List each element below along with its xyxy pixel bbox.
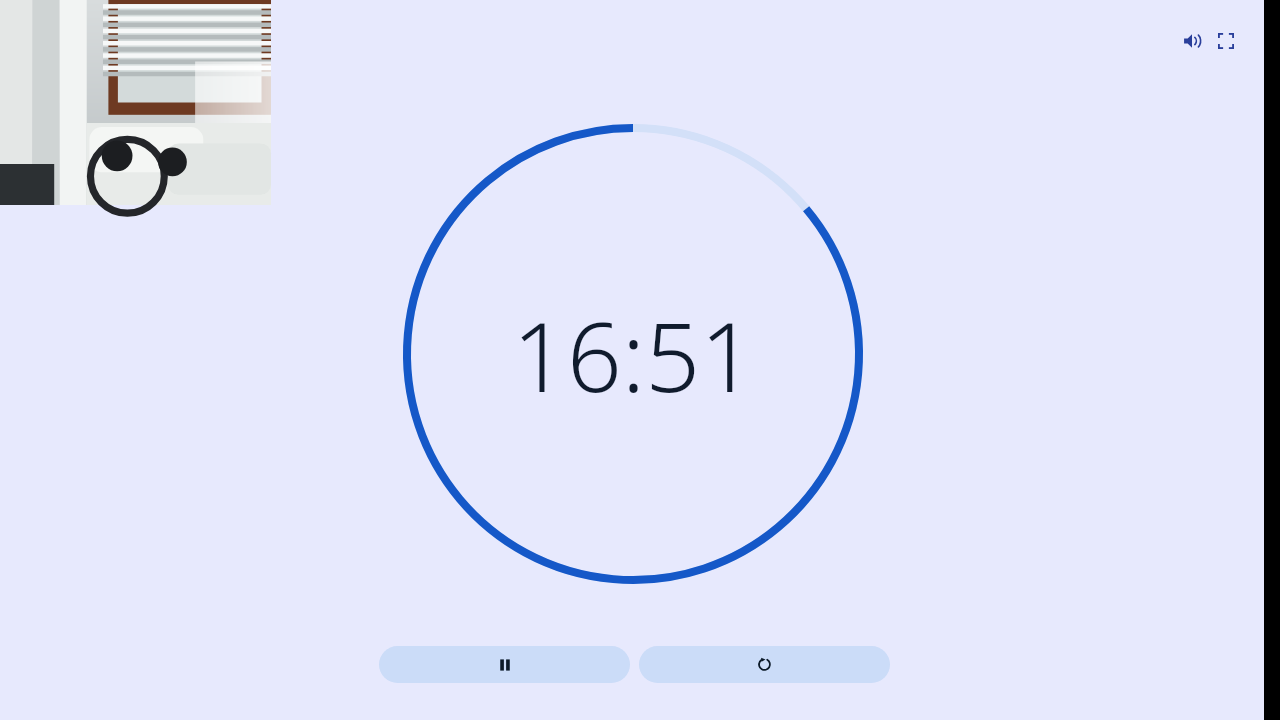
button[interactable]: Restart bbox=[639, 646, 890, 683]
staticText: 16:51 bbox=[512, 289, 755, 420]
button[interactable]: Pause bbox=[379, 646, 630, 683]
button[interactable]: Video preview bbox=[0, 0, 271, 205]
button[interactable]: Fullscreen bbox=[1212, 27, 1240, 55]
button[interactable]: Mute volume bbox=[1178, 27, 1206, 55]
